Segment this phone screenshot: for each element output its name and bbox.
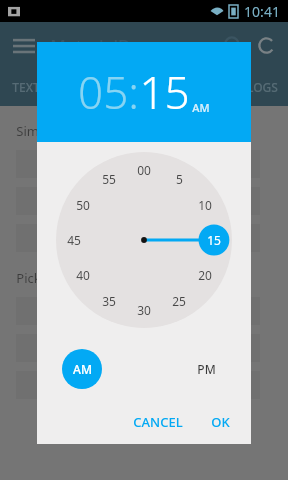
button[interactable]	[16, 150, 260, 178]
staticText: 50	[76, 197, 90, 213]
staticText: DIALOGS	[226, 79, 278, 95]
button[interactable]	[16, 297, 260, 325]
button[interactable]: TEXT	[0, 71, 52, 103]
button[interactable]: Navigation menu	[13, 34, 35, 56]
staticText: Simple	[16, 122, 58, 140]
staticText: OK	[211, 413, 230, 431]
staticText: 35	[102, 293, 116, 309]
button[interactable]: Minute picker	[56, 152, 232, 328]
button[interactable]: DIALOGS	[216, 71, 288, 103]
staticText: 20	[198, 267, 212, 283]
staticText: PM	[197, 361, 216, 377]
button[interactable]: 15	[139, 62, 190, 122]
button[interactable]	[16, 224, 260, 252]
staticText: 55	[102, 171, 116, 187]
button[interactable]: Search	[223, 35, 244, 56]
staticText: TEXT	[12, 79, 40, 95]
button[interactable]: 05:	[78, 62, 139, 122]
staticText: MaterialDemo	[50, 34, 167, 57]
staticText: AM	[73, 361, 92, 377]
staticText: 00	[137, 162, 151, 178]
button[interactable]: CANCEL	[124, 404, 192, 440]
staticText: 15	[139, 62, 190, 122]
staticText: 40	[76, 267, 90, 283]
button[interactable]: Refresh	[256, 35, 277, 56]
staticText: 10	[198, 197, 212, 213]
button[interactable]	[16, 334, 260, 362]
staticText: 25	[172, 293, 186, 309]
staticText: Pickers	[16, 269, 60, 287]
staticText: 10:41	[244, 2, 280, 21]
staticText: CANCEL	[133, 413, 183, 431]
button[interactable]: OK	[202, 404, 239, 440]
staticText: 45	[67, 232, 81, 248]
button[interactable]: AM	[62, 349, 102, 389]
staticText: 5	[176, 171, 183, 187]
staticText: AM	[192, 100, 210, 115]
staticText: 30	[137, 302, 151, 318]
staticText: 05:	[78, 62, 139, 122]
button[interactable]	[16, 371, 260, 399]
staticText: 15	[207, 232, 221, 248]
button[interactable]	[16, 187, 260, 215]
button[interactable]: PM	[186, 349, 226, 389]
